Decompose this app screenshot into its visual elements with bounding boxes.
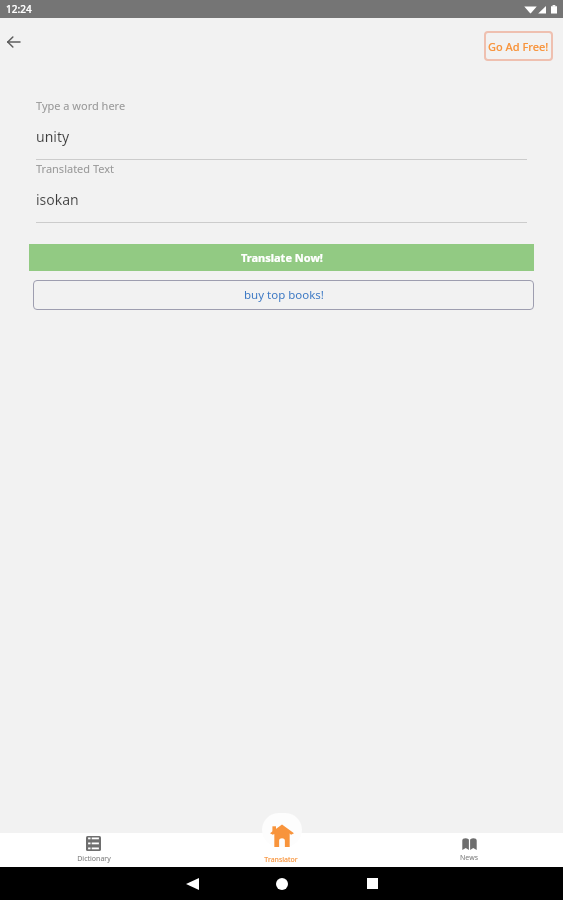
button[interactable]: buy top books! [33, 280, 534, 310]
staticText: Type a word here [36, 98, 126, 113]
button[interactable]: Translator [270, 823, 294, 847]
button[interactable]: Go Ad Free! [484, 31, 553, 61]
button[interactable]: Dictionary [0, 833, 187, 867]
button[interactable]: Translator [187, 833, 375, 867]
staticText: unity [36, 127, 70, 146]
button[interactable]: Back [0, 29, 26, 55]
staticText: Dictionary [77, 854, 111, 864]
staticText: News [460, 853, 478, 863]
button[interactable]: Translate Now! [29, 244, 534, 271]
button[interactable]: Home [237, 867, 327, 900]
button[interactable]: Back [147, 867, 237, 900]
staticText: isokan [36, 190, 79, 209]
staticText: Translator [264, 855, 298, 865]
staticText: Translated Text [36, 161, 115, 176]
staticText: 12:24 [6, 2, 32, 16]
button[interactable]: Recent apps [327, 867, 417, 900]
button[interactable]: News [375, 833, 563, 867]
staticText: buy top books! [244, 287, 324, 303]
staticText: Translate Now! [241, 250, 323, 265]
staticText: Go Ad Free! [488, 39, 549, 54]
